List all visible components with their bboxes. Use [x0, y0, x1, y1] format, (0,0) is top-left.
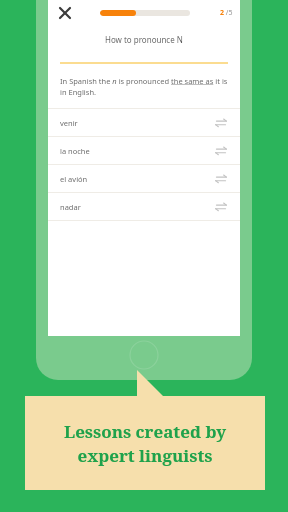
button[interactable]: nadar [48, 193, 240, 220]
button[interactable]: el avión [48, 165, 240, 192]
staticText: Lessons created by expert linguists [64, 420, 226, 467]
other: Translate la noche [214, 144, 228, 158]
other: Translate nadar [214, 200, 228, 214]
other: Translate el avión [214, 172, 228, 186]
button[interactable]: venir [48, 109, 240, 136]
staticText: venir [60, 118, 78, 128]
button[interactable]: Close [54, 2, 76, 24]
button[interactable]: la noche [48, 137, 240, 164]
staticText: nadar [60, 202, 81, 212]
staticText: el avión [60, 174, 88, 184]
staticText: How to pronounce N [105, 34, 183, 45]
staticText: la noche [60, 146, 90, 156]
staticText: In Spanish the n is pronounced the same … [60, 76, 228, 97]
other: Translate venir [214, 116, 228, 130]
staticText: 2 /5 [220, 8, 233, 18]
